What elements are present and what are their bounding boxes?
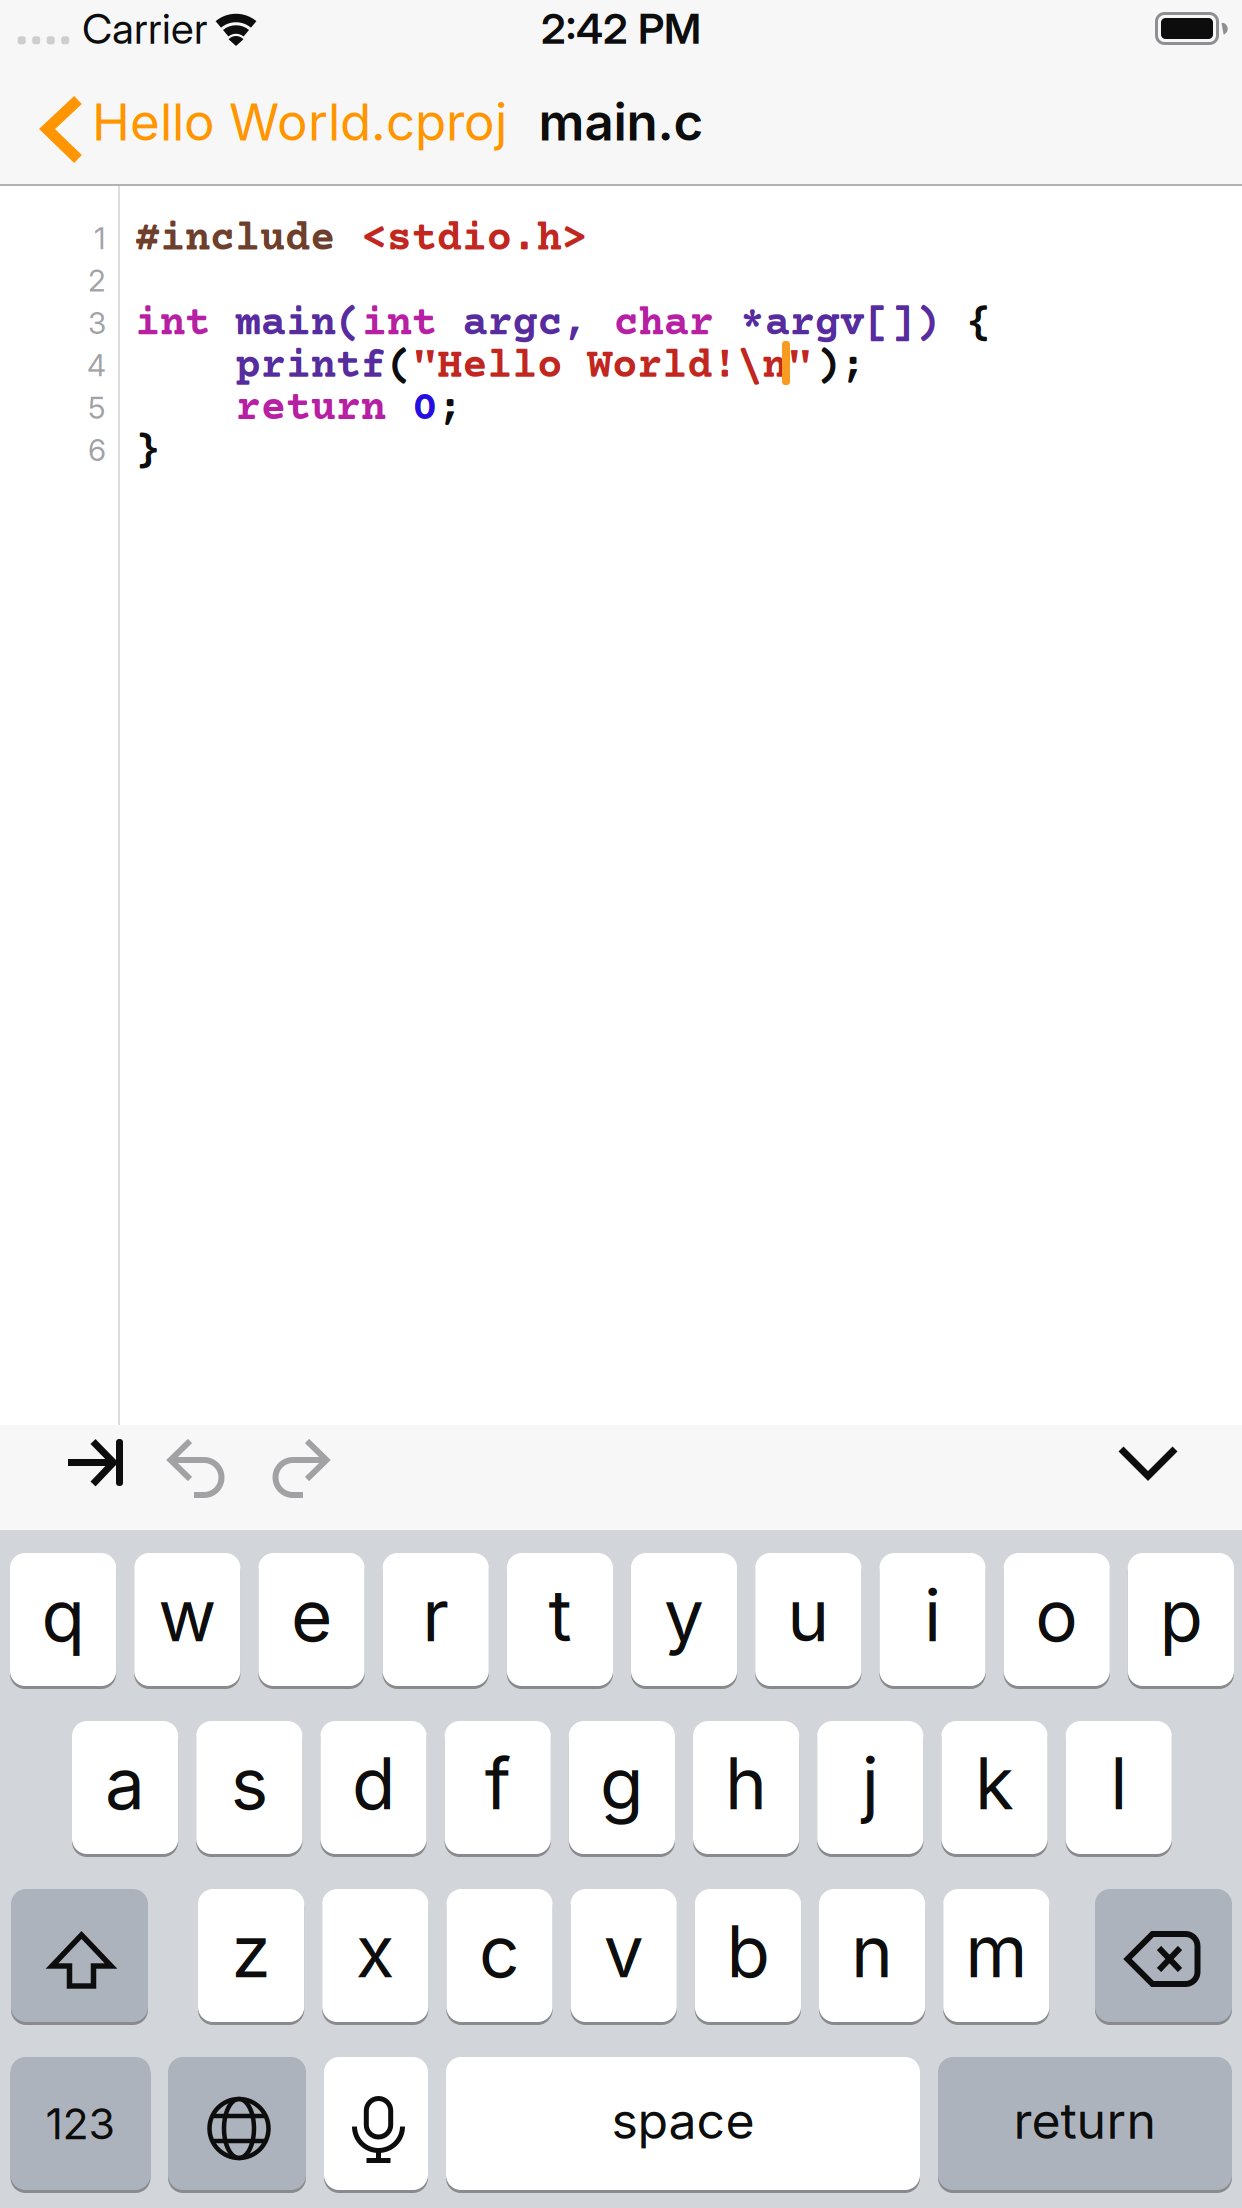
staticText: ( xyxy=(387,344,412,391)
staticText: y xyxy=(664,1572,704,1658)
staticText: main( xyxy=(236,301,361,349)
staticText: int xyxy=(135,301,210,349)
staticText: z xyxy=(232,1908,271,1994)
staticText: { xyxy=(967,301,992,349)
staticText: space xyxy=(611,2090,754,2151)
button[interactable]: b xyxy=(695,1889,801,2022)
button[interactable]: r xyxy=(383,1553,489,1686)
staticText: 5 xyxy=(88,390,106,426)
staticText: Carrier xyxy=(82,3,208,54)
staticText: h xyxy=(725,1740,767,1826)
staticText: #include xyxy=(135,217,335,264)
staticText: argc, xyxy=(463,301,588,349)
button[interactable]: Dismiss keyboard xyxy=(1118,1432,1178,1492)
staticText: o xyxy=(1035,1572,1078,1658)
button[interactable]: q xyxy=(10,1553,116,1686)
staticText: w xyxy=(158,1572,216,1658)
button[interactable]: m xyxy=(943,1889,1049,2022)
staticText: 123 xyxy=(45,2097,115,2149)
button[interactable]: Dictate xyxy=(324,2057,428,2190)
staticText: v xyxy=(604,1908,644,1994)
button[interactable]: return xyxy=(938,2057,1232,2190)
button[interactable]: Undo xyxy=(166,1437,226,1497)
button[interactable]: u xyxy=(755,1553,861,1686)
staticText: f xyxy=(485,1740,511,1826)
staticText: c xyxy=(479,1908,520,1994)
button[interactable]: p xyxy=(1128,1553,1234,1686)
staticText: <stdio.h> xyxy=(362,217,587,264)
staticText: n xyxy=(851,1908,893,1994)
staticText: i xyxy=(924,1572,941,1658)
button[interactable]: z xyxy=(198,1889,304,2022)
button[interactable]: x xyxy=(322,1889,428,2022)
button[interactable]: t xyxy=(507,1553,613,1686)
staticText: return xyxy=(236,386,386,433)
staticText: 0 xyxy=(412,386,437,433)
button[interactable]: j xyxy=(817,1721,923,1854)
staticText: 2 xyxy=(88,263,106,299)
button[interactable]: e xyxy=(258,1553,365,1686)
staticText: k xyxy=(975,1740,1014,1826)
staticText: ); xyxy=(815,344,865,391)
button[interactable]: Tab xyxy=(60,1432,124,1492)
staticText: q xyxy=(42,1572,85,1658)
staticText: j xyxy=(862,1740,879,1826)
button[interactable]: f xyxy=(445,1721,551,1854)
staticText: x xyxy=(356,1908,395,1994)
button[interactable]: Numbers xyxy=(10,2057,150,2190)
button[interactable]: w xyxy=(134,1553,240,1686)
staticText: printf xyxy=(236,344,386,391)
button[interactable]: a xyxy=(72,1721,178,1854)
button[interactable]: g xyxy=(569,1721,675,1854)
staticText: 2:42 PM xyxy=(541,3,701,54)
button[interactable]: l xyxy=(1066,1721,1172,1854)
staticText: g xyxy=(600,1740,644,1826)
staticText: a xyxy=(105,1740,145,1826)
button[interactable]: h xyxy=(693,1721,799,1854)
staticText: 6 xyxy=(88,432,106,468)
button[interactable]: Redo xyxy=(271,1437,331,1497)
staticText: 4 xyxy=(87,347,106,384)
staticText: l xyxy=(1110,1740,1127,1826)
staticText: u xyxy=(787,1572,829,1658)
button[interactable]: y xyxy=(631,1553,737,1686)
staticText: return xyxy=(1013,2090,1156,2151)
staticText: } xyxy=(135,429,160,476)
button[interactable]: o xyxy=(1004,1553,1110,1686)
staticText: 3 xyxy=(88,305,106,341)
button[interactable]: Back to Hello World.cproj xyxy=(41,91,507,161)
button[interactable]: n xyxy=(819,1889,925,2022)
staticText: int xyxy=(362,301,437,349)
staticText: Hello World.cproj xyxy=(92,91,507,153)
staticText: p xyxy=(1159,1572,1202,1658)
button[interactable]: c xyxy=(446,1889,553,2022)
button[interactable]: d xyxy=(320,1721,427,1854)
button[interactable]: Delete xyxy=(1095,1889,1232,2022)
staticText: r xyxy=(422,1572,449,1658)
staticText: main.c xyxy=(538,91,703,153)
staticText: s xyxy=(231,1740,268,1826)
staticText: ; xyxy=(437,386,462,433)
button[interactable]: k xyxy=(941,1721,1048,1854)
button[interactable]: s xyxy=(196,1721,302,1854)
button[interactable]: v xyxy=(571,1889,677,2022)
button[interactable]: space xyxy=(446,2057,920,2190)
staticText: d xyxy=(352,1740,395,1826)
staticText: b xyxy=(726,1908,769,1994)
staticText: char xyxy=(614,301,714,349)
staticText: e xyxy=(291,1572,332,1658)
staticText: m xyxy=(965,1908,1027,1994)
staticText: t xyxy=(548,1572,571,1658)
staticText: "Hello World!\n" xyxy=(412,344,812,391)
staticText: 1 xyxy=(94,220,106,256)
button[interactable]: Next keyboard xyxy=(168,2057,306,2190)
staticText: *argv[]) xyxy=(740,301,940,349)
button[interactable]: i xyxy=(879,1553,986,1686)
button[interactable]: Shift xyxy=(11,1889,148,2022)
